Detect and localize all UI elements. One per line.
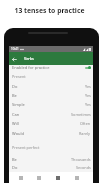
staticText: Sometimes: [71, 112, 91, 117]
staticText: Simple: [12, 102, 25, 107]
button[interactable]: Would: [9, 129, 93, 138]
staticText: 10:41: [11, 47, 19, 51]
staticText: Verbs: [24, 56, 34, 61]
button[interactable]: Be: [9, 91, 93, 100]
staticText: 13 tenses to practice: [0, 6, 101, 15]
staticText: Seconds: [76, 165, 91, 170]
button[interactable]: Enabled for practice: [9, 63, 93, 72]
button[interactable]: Search: [30, 172, 48, 183]
staticText: Thousands: [71, 157, 91, 162]
button[interactable]: Can: [9, 110, 93, 119]
button[interactable]: Will: [9, 119, 93, 128]
staticText: Do: [12, 84, 18, 89]
button[interactable]: Do: [9, 82, 93, 91]
staticText: Enabled for practice: [12, 65, 50, 70]
staticText: Would: [12, 131, 25, 136]
staticText: Often: [80, 121, 91, 126]
button[interactable]: Profile: [67, 172, 86, 183]
button[interactable]: Be: [9, 155, 93, 164]
button[interactable]: Back: [9, 54, 19, 64]
staticText: Present perfect: [12, 145, 40, 150]
staticText: Yes: [85, 102, 91, 107]
staticText: Be: [12, 93, 17, 98]
button[interactable]: Simple: [9, 100, 93, 109]
staticText: Be: [12, 157, 17, 162]
staticText: Yes: [85, 93, 91, 98]
button[interactable]: Home: [12, 172, 30, 183]
button[interactable]: Do: [9, 163, 93, 172]
staticText: Present: [12, 74, 26, 79]
staticText: Rarely: [79, 131, 91, 136]
staticText: Yes: [85, 84, 91, 89]
button[interactable]: Practice: [48, 172, 67, 183]
staticText: Do: [12, 165, 18, 170]
staticText: Can: [12, 112, 20, 117]
staticText: Will: [12, 121, 19, 126]
